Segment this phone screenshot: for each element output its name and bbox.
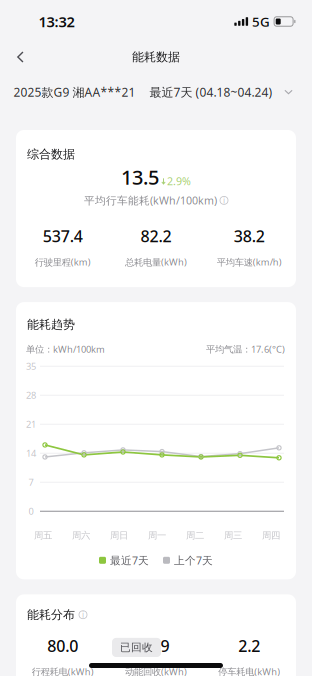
staticText: 0 — [28, 505, 33, 517]
staticText: 能耗分布 — [27, 607, 75, 622]
staticText: 周三 — [224, 530, 242, 541]
staticText: 5G — [252, 13, 270, 30]
staticText: 7 — [28, 476, 33, 488]
staticText: 动能回收(kWh) — [125, 665, 187, 676]
staticText: 周六 — [72, 530, 90, 541]
staticText: -2.9 — [142, 635, 169, 656]
staticText: 总耗电量(kWh) — [125, 256, 187, 268]
staticText: 13.5 — [121, 164, 159, 190]
staticText: 最近7天 (04.18~04.24) — [149, 84, 272, 100]
staticText: 13:32 — [38, 12, 74, 31]
staticText: 综合数据 — [27, 147, 75, 162]
staticText: 2.9% — [167, 174, 191, 188]
staticText: 35 — [26, 360, 36, 372]
staticText: 周日 — [110, 530, 128, 541]
staticText: 已回收 — [120, 641, 153, 654]
staticText: 平均车速(km/h) — [217, 256, 282, 268]
staticText: 停车耗电(kWh) — [218, 665, 280, 676]
staticText: 2025款G9 湘AA***21 — [13, 84, 135, 100]
staticText: 82.2 — [140, 225, 171, 247]
staticText: 平均行车能耗(kWh/100km) — [84, 193, 217, 207]
button[interactable]: 最近7天 (04.18~04.24) — [149, 84, 272, 100]
staticText: 能耗数据 — [132, 50, 180, 64]
button[interactable]: 选择时间范围 — [280, 85, 296, 99]
staticText: 行驶里程(km) — [35, 256, 91, 268]
staticText: 周四 — [262, 530, 280, 541]
staticText: i — [82, 609, 84, 620]
staticText: 周二 — [186, 530, 204, 541]
staticText: 28 — [26, 389, 36, 401]
button[interactable]: 返回 — [3, 44, 37, 70]
staticText: 能耗趋势 — [27, 317, 75, 332]
staticText: 2.2 — [238, 635, 260, 656]
staticText: 14 — [26, 447, 36, 459]
staticText: 平均气温：17.6(°C) — [206, 343, 285, 355]
staticText: 21 — [26, 418, 36, 430]
staticText: 80.0 — [47, 635, 78, 656]
staticText: 单位：kWh/100km — [26, 343, 105, 355]
staticText: 537.4 — [43, 225, 83, 247]
staticText: 周五 — [34, 530, 52, 541]
staticText: 最近7天 — [110, 553, 149, 567]
staticText: i — [223, 195, 225, 206]
button[interactable]: 2025款G9 湘AA***21 — [13, 84, 135, 100]
staticText: 上个7天 — [174, 553, 213, 567]
staticText: 38.2 — [234, 225, 265, 247]
staticText: 行程耗电(kWh) — [32, 665, 94, 676]
staticText: 周一 — [148, 530, 166, 541]
